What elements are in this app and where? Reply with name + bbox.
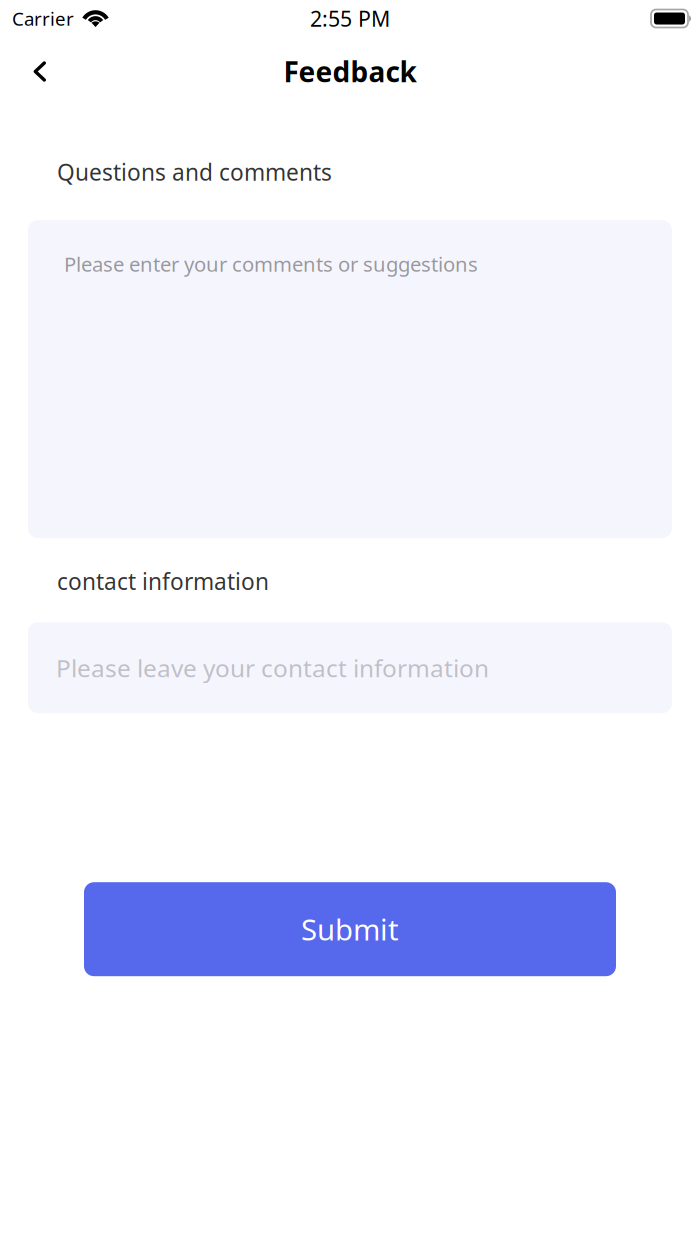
button[interactable]: Please leave your contact information — [28, 622, 672, 713]
staticText: Please leave your contact information — [56, 651, 489, 684]
button[interactable]: Please enter your comments or suggestion… — [28, 220, 672, 538]
staticText: contact information — [57, 566, 269, 596]
staticText: Please enter your comments or suggestion… — [64, 250, 478, 278]
staticText: 2:55 PM — [310, 4, 390, 33]
staticText: Questions and comments — [57, 157, 332, 187]
staticText: Submit — [301, 910, 399, 949]
button[interactable]: Submit — [84, 882, 616, 976]
button[interactable]: Back — [0, 43, 67, 94]
staticText: Feedback — [283, 53, 416, 90]
staticText: Carrier — [12, 6, 74, 31]
